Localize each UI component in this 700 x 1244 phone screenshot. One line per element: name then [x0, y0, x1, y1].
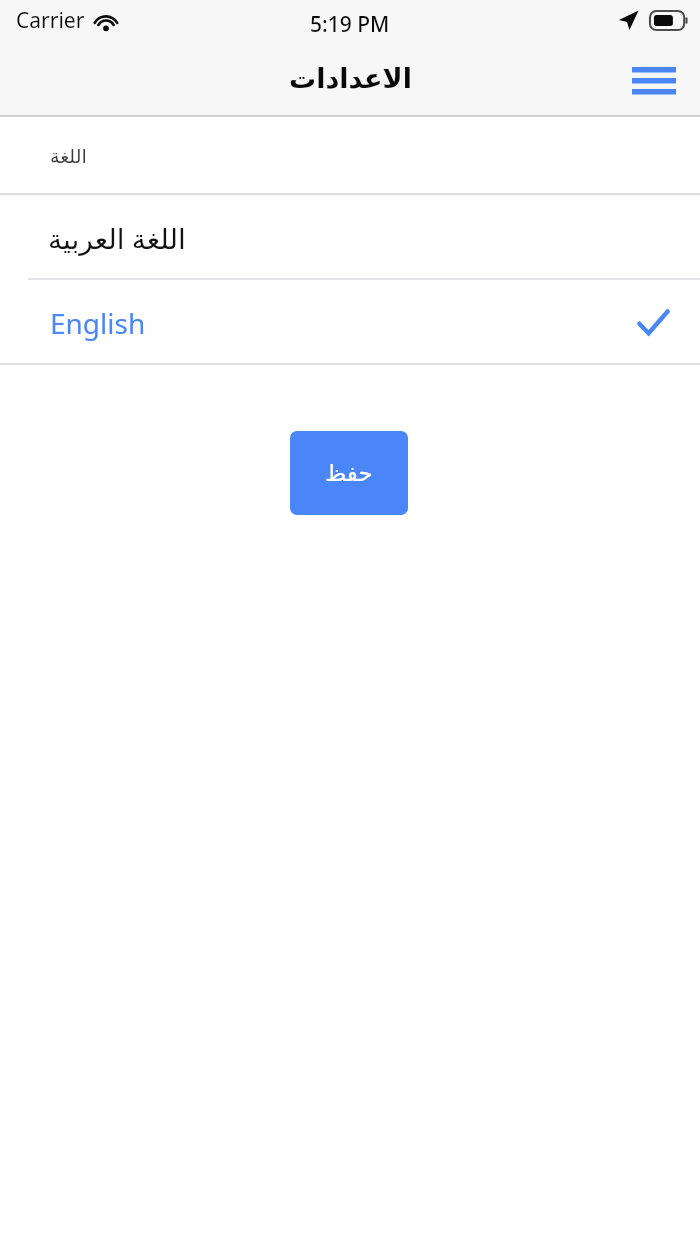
staticText: اللغة العربية [48, 219, 186, 257]
staticText: Carrier [16, 6, 85, 35]
button[interactable]: اللغة [0, 117, 700, 195]
button[interactable]: اللغة العربية [0, 195, 700, 280]
staticText: 5:19 PM [310, 10, 390, 39]
button[interactable]: حفظ [290, 431, 408, 515]
staticText: حفظ [325, 460, 373, 487]
staticText: الاعدادات [289, 63, 412, 94]
staticText: اللغة [50, 145, 87, 167]
button[interactable]: Menu [622, 50, 686, 108]
button[interactable]: English [0, 280, 700, 365]
staticText: English [50, 304, 146, 342]
